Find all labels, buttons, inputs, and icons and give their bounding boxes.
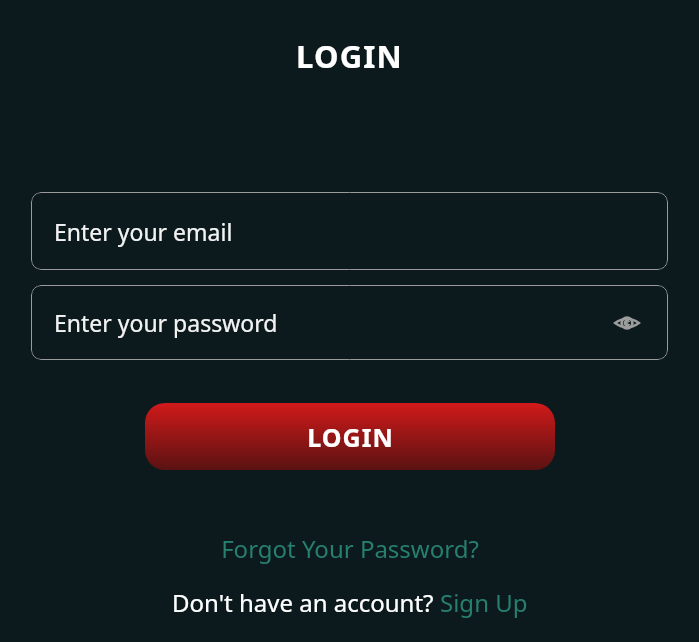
- button[interactable]: Enter your email: [31, 192, 668, 270]
- staticText: LOGIN: [307, 420, 394, 454]
- button[interactable]: Show password: [612, 308, 642, 338]
- button[interactable]: LOGIN: [145, 403, 555, 470]
- button[interactable]: Forgot Your Password?: [221, 532, 479, 565]
- staticText: Sign Up: [440, 586, 528, 619]
- staticText: Forgot Your Password?: [221, 532, 479, 565]
- staticText: Enter your password: [54, 307, 278, 338]
- staticText: Don't have an account?: [172, 586, 440, 619]
- staticText: Enter your email: [54, 216, 233, 247]
- staticText: LOGIN: [296, 35, 403, 77]
- button[interactable]: Enter your password: [31, 285, 668, 360]
- button[interactable]: Sign Up: [440, 586, 528, 619]
